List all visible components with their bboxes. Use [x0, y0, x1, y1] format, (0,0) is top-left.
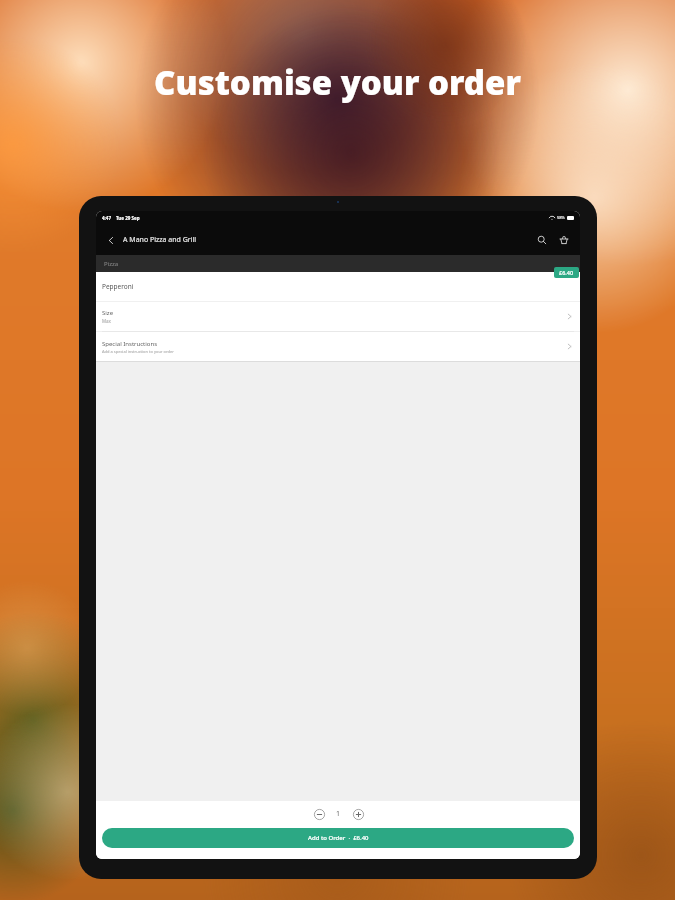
staticText: 4:47 [102, 215, 111, 221]
staticText: A Mano Pizza and Grill [123, 235, 197, 245]
staticText: 58% [557, 215, 565, 220]
button[interactable]: Size [96, 302, 580, 331]
button[interactable]: Basket [556, 232, 572, 248]
button[interactable]: Decrease quantity [312, 807, 326, 821]
staticText: Tue 29 Sep [116, 215, 140, 221]
button[interactable]: Increase quantity [351, 807, 365, 821]
staticText: Size [102, 309, 114, 317]
button[interactable]: Add to Order · £6.40 [102, 828, 574, 848]
staticText: 1 [336, 809, 341, 819]
staticText: Max [102, 318, 111, 324]
staticText: Pepperoni [102, 282, 134, 291]
staticText: £6.40 [559, 269, 574, 276]
staticText: Pizza [104, 260, 119, 268]
button[interactable]: Special Instructions [96, 332, 580, 361]
button[interactable]: Search [534, 232, 550, 248]
staticText: Special Instructions [102, 340, 158, 348]
staticText: Customise your order [0, 60, 675, 105]
staticText: Add to Order · £6.40 [308, 834, 369, 842]
staticText: Add a special instruction to your order [102, 349, 174, 354]
button[interactable]: Back [104, 233, 118, 247]
